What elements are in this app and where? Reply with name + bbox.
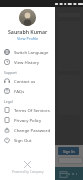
button[interactable]: Contact us [0, 76, 55, 86]
button[interactable]: Switch Language [0, 47, 55, 57]
staticText: Privacy Policy [14, 117, 42, 123]
staticText: View History [14, 59, 39, 65]
staticText: Terms Of Services [14, 107, 50, 113]
button[interactable]: FAQs [0, 86, 55, 96]
button[interactable]: More [68, 173, 77, 175]
staticText: Saurabh Kumar [8, 28, 48, 35]
button[interactable]: Home [58, 169, 68, 179]
button[interactable]: Profile photo [19, 9, 36, 26]
staticText: FAQs [14, 88, 25, 94]
staticText: View Profile [17, 36, 39, 41]
button[interactable]: Terms Of Services [0, 105, 55, 115]
staticText: Legal [4, 99, 13, 104]
staticText: Sign Out [14, 137, 32, 143]
staticText: Contact us [14, 78, 36, 84]
staticText: Sign In [63, 149, 75, 154]
staticText: Powered by Company [12, 170, 44, 174]
button[interactable] [0, 0, 83, 180]
button[interactable]: Sign Out [0, 135, 55, 145]
button[interactable]: Change Password [0, 125, 55, 135]
button[interactable]: Privacy Policy [0, 115, 55, 125]
button[interactable]: View History [0, 57, 55, 67]
staticText: Switch Language [14, 49, 49, 55]
staticText: Support [4, 70, 17, 75]
button[interactable]: Sign In [58, 147, 79, 155]
staticText: Change Password [14, 127, 51, 133]
button[interactable]: View Profile [17, 36, 39, 41]
